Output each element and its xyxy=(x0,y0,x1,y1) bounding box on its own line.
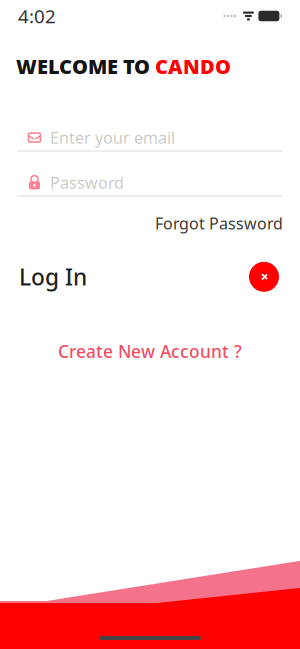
staticText: Enter your email xyxy=(50,127,175,148)
staticText: Log In xyxy=(19,262,87,292)
button[interactable]: Password xyxy=(0,170,300,197)
button[interactable]: Forgot Password xyxy=(155,209,283,238)
staticText: Create New Account ? xyxy=(58,340,242,363)
staticText: CANDO xyxy=(155,53,231,80)
button[interactable]: Enter your email xyxy=(0,125,300,152)
staticText: WELCOME TO xyxy=(16,53,155,80)
button[interactable]: Log In xyxy=(247,260,281,294)
staticText: 4:02 xyxy=(18,4,56,28)
button[interactable]: Create New Account ? xyxy=(48,336,252,367)
staticText: Password xyxy=(50,172,124,193)
staticText: Forgot Password xyxy=(155,213,283,234)
